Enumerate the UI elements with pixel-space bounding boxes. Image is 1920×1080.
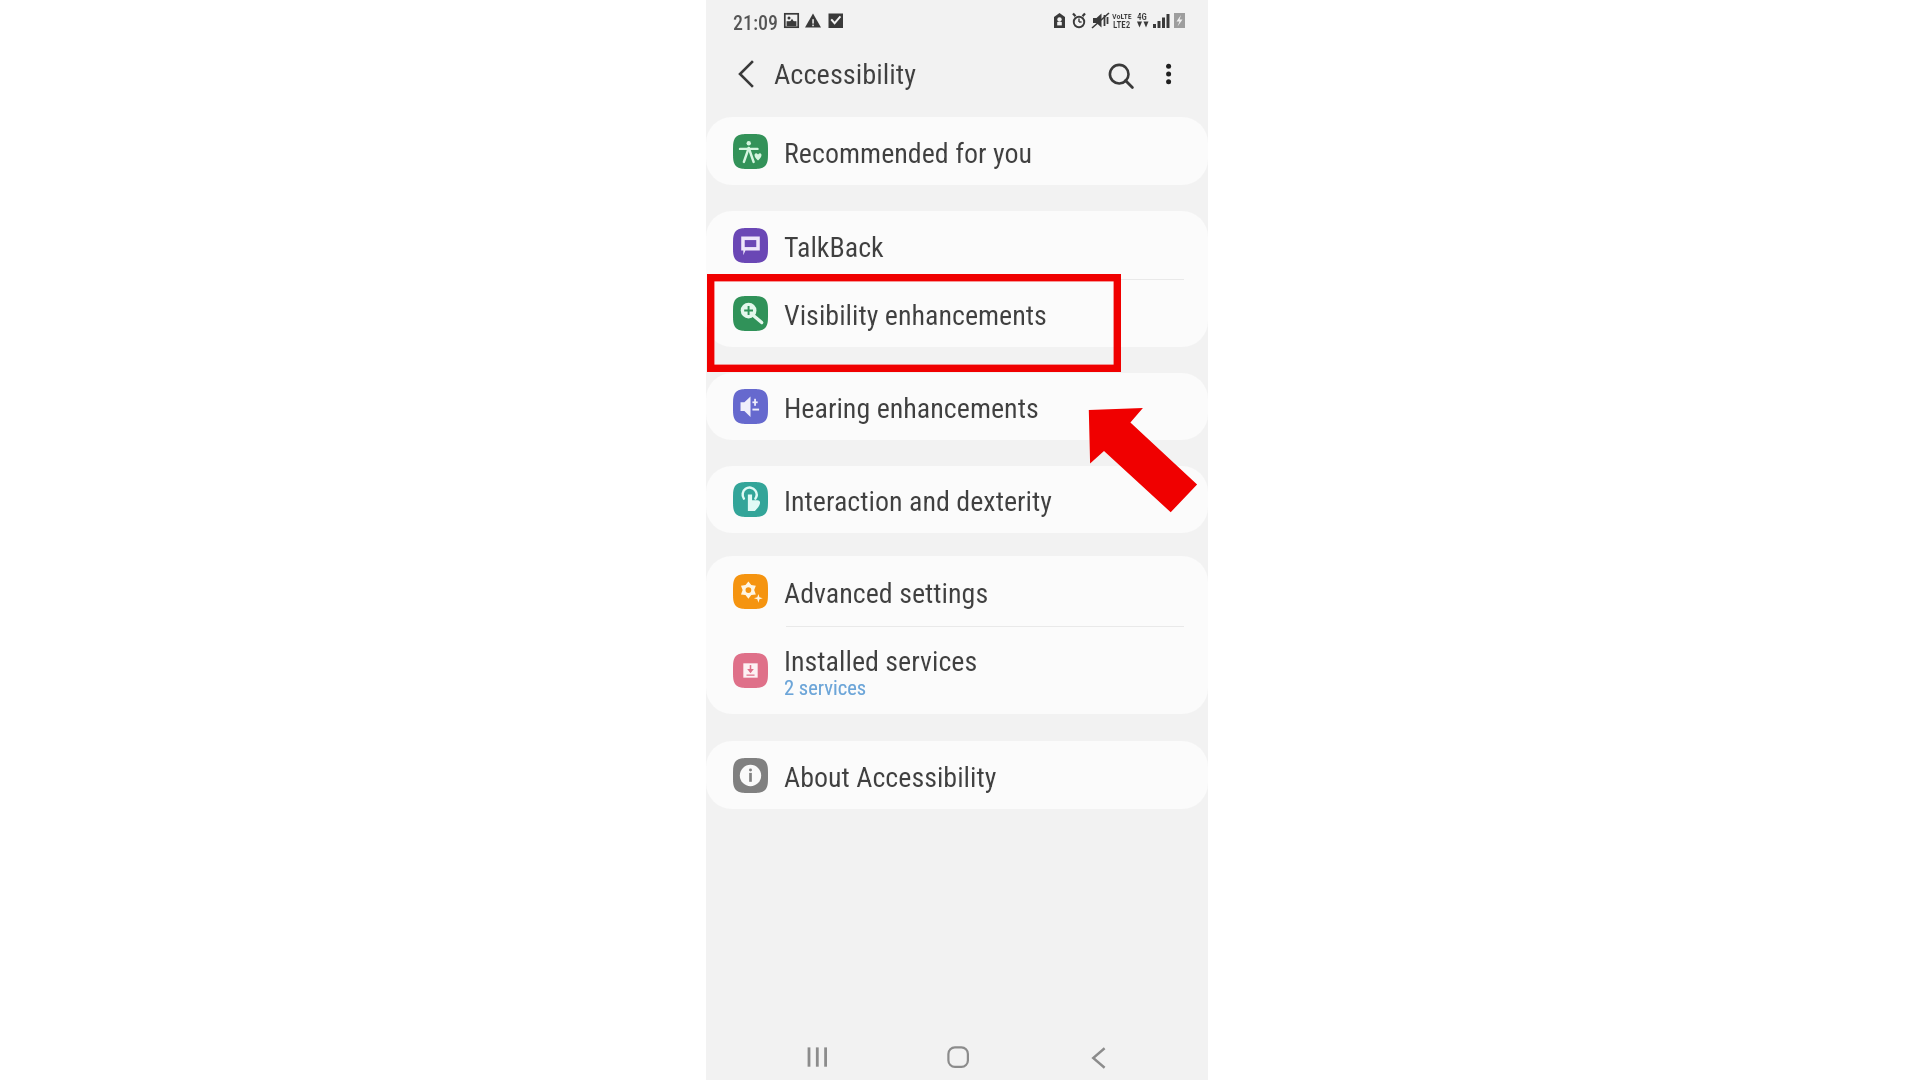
staticText: Accessibility xyxy=(774,58,917,91)
button[interactable]: Installed services xyxy=(706,626,1208,714)
button[interactable]: Visibility enhancements xyxy=(706,279,1208,347)
button[interactable]: Recents xyxy=(796,1040,836,1080)
button[interactable]: More options xyxy=(1145,50,1193,98)
staticText: About Accessibility xyxy=(784,761,997,794)
staticText: Hearing enhancements xyxy=(784,392,1039,425)
staticText: Interaction and dexterity xyxy=(784,485,1052,518)
button[interactable]: TalkBack xyxy=(706,211,1208,279)
button[interactable]: About Accessibility xyxy=(706,741,1208,809)
button[interactable]: Advanced settings xyxy=(706,556,1208,626)
staticText: 21:09 xyxy=(733,11,779,34)
staticText: 4G xyxy=(1137,12,1147,23)
staticText: VoLTE xyxy=(1112,12,1132,21)
button[interactable]: Search xyxy=(1095,50,1143,98)
button[interactable]: Recommended for you xyxy=(706,117,1208,185)
staticText: Recommended for you xyxy=(784,137,1033,170)
button[interactable]: Hearing enhancements xyxy=(706,373,1208,440)
staticText: TalkBack xyxy=(784,231,884,264)
button[interactable]: Home xyxy=(937,1040,977,1080)
staticText: Advanced settings xyxy=(784,577,989,610)
button[interactable]: Navigate up xyxy=(721,50,769,98)
staticText: Installed services xyxy=(784,645,978,678)
button[interactable]: Back xyxy=(1078,1040,1118,1080)
staticText: LTE2 xyxy=(1113,20,1131,31)
staticText: 2 services xyxy=(784,676,867,700)
button[interactable]: Interaction and dexterity xyxy=(706,466,1208,533)
staticText: Visibility enhancements xyxy=(784,299,1047,332)
